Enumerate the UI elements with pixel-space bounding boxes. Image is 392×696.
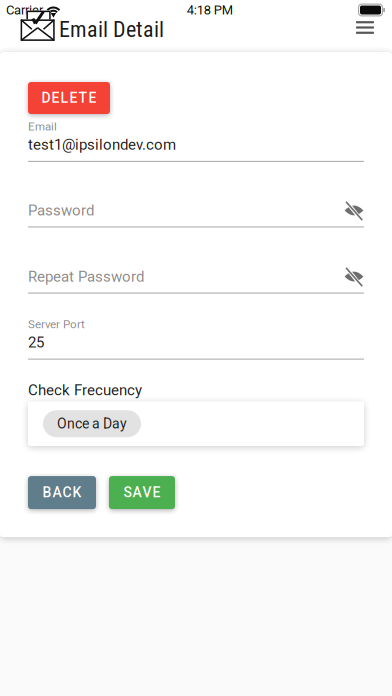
staticText: Carrier (6, 2, 43, 18)
button[interactable]: Show Repeat Password (344, 268, 364, 286)
staticText: Email Detail (59, 17, 164, 42)
staticText: Email (28, 120, 57, 133)
staticText: Server Port (28, 318, 85, 331)
staticText: 25 (28, 334, 44, 351)
staticText: Repeat Password (28, 268, 144, 285)
button[interactable]: Menu (344, 11, 386, 43)
staticText: 4:18 PM (187, 2, 233, 18)
staticText: S A V E (123, 484, 160, 501)
staticText: D E L E T E (41, 90, 96, 106)
button[interactable]: D E L E T E (28, 82, 110, 114)
button[interactable]: Show Password (344, 201, 364, 219)
button[interactable]: S A V E (109, 476, 175, 509)
staticText: Password (28, 202, 94, 219)
staticText: Once a Day (57, 415, 127, 432)
staticText: B A C K (42, 484, 81, 501)
button[interactable]: B A C K (28, 476, 96, 509)
staticText: test1@ipsilondev.com (28, 136, 176, 153)
staticText: Check Frecuency (28, 381, 142, 399)
